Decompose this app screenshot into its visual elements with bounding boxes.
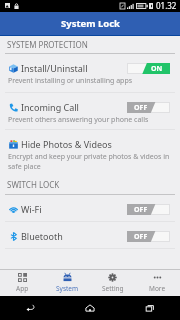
staticText: OFF [134, 205, 148, 215]
staticText: More [149, 284, 166, 293]
button[interactable]: Bluetooth [0, 222, 180, 249]
staticText: Incoming Call [21, 101, 79, 113]
button[interactable]: OFF [127, 204, 170, 215]
staticText: ON [151, 64, 163, 74]
button[interactable]: Recent apps [120, 296, 180, 320]
staticText: 01.32 [156, 0, 177, 11]
staticText: safe place [8, 162, 41, 172]
staticText: System Lock [61, 17, 120, 30]
staticText: Encrypt and keep your private photos & v… [8, 152, 170, 162]
button[interactable]: Hide Photos & Videos [0, 130, 180, 174]
button[interactable]: Wi-Fi [0, 195, 180, 222]
button[interactable]: System [45, 270, 90, 296]
staticText: Setting [102, 284, 124, 293]
button[interactable]: OFF [127, 231, 170, 242]
button[interactable]: More [135, 270, 180, 296]
button[interactable]: App [0, 270, 45, 296]
staticText: Prevent others answering your phone call… [8, 115, 149, 125]
button[interactable]: Home [60, 296, 120, 320]
staticText: SYSTEM PROTECTION [7, 39, 88, 50]
button[interactable]: Back [0, 296, 60, 320]
staticText: Install/Uninstall [21, 62, 88, 74]
staticText: App [16, 284, 29, 293]
staticText: Wi-Fi [21, 203, 42, 215]
button[interactable]: Incoming Call [0, 93, 180, 130]
staticText: SWITCH LOCK [7, 179, 60, 190]
staticText: Bluetooth [21, 230, 63, 242]
staticText: System [56, 284, 79, 293]
button[interactable]: OFF [127, 102, 170, 113]
button[interactable]: Setting [90, 270, 135, 296]
staticText: Hide Photos & Videos [21, 138, 112, 150]
staticText: OFF [134, 103, 148, 113]
button[interactable]: ON [127, 63, 170, 74]
staticText: Prevent installing or uninstalling apps [8, 76, 133, 86]
staticText: OFF [134, 232, 148, 242]
button[interactable]: Install/Uninstall [0, 54, 180, 93]
